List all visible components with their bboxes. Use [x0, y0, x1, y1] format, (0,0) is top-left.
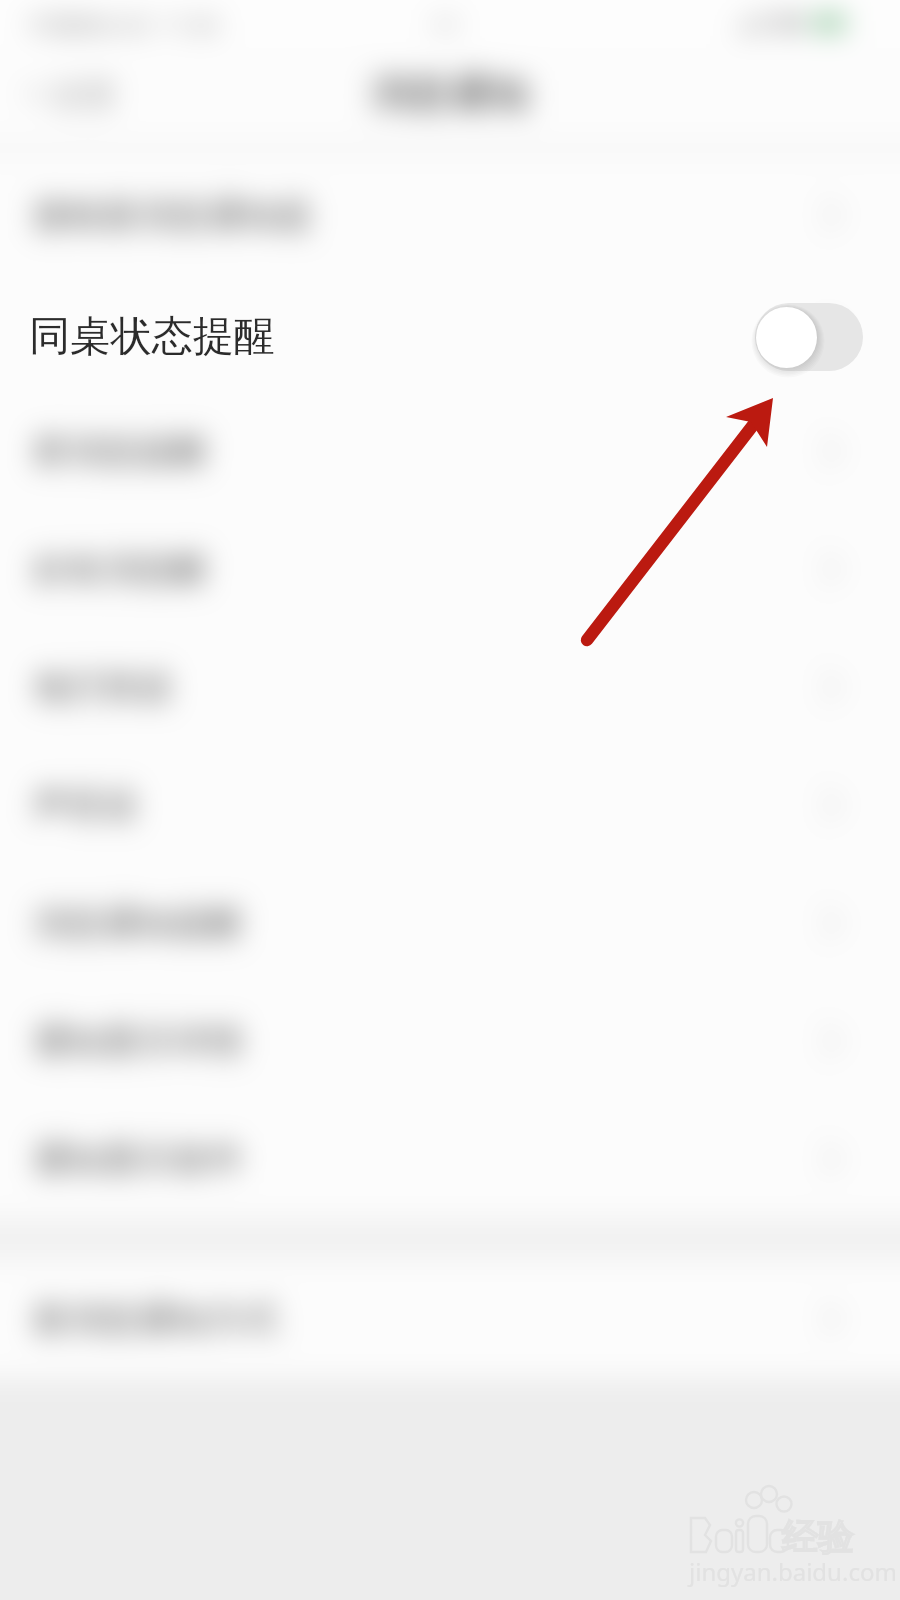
button[interactable]: 消息通知提醒: [0, 864, 900, 982]
staticText: 通知显示发件: [33, 1137, 243, 1181]
button[interactable]: [0, 274, 900, 392]
button[interactable]: 声音设: [0, 746, 900, 864]
staticText: 好友消息醒: [33, 547, 208, 591]
staticText: < 设置: [26, 72, 117, 116]
button[interactable]: 返回 设置: [0, 48, 180, 140]
staticText: 中国移动 4G 11:44: [28, 9, 218, 39]
staticText: 经验: [782, 1514, 854, 1559]
button[interactable]: 新消息通知方式: [0, 1260, 900, 1378]
staticText: 消息通知: [370, 68, 530, 118]
button[interactable]: 通知显示发件: [0, 1100, 900, 1218]
button[interactable]: 群消息提醒: [0, 392, 900, 510]
staticText: 免打扰设: [33, 665, 173, 709]
button[interactable]: 同桌状态提醒: [0, 278, 900, 396]
staticText: 同桌状态提醒: [29, 311, 275, 363]
staticText: 声音设: [33, 783, 138, 827]
staticText: 新消息通知方式: [33, 1297, 278, 1341]
staticText: 群消息提醒: [33, 429, 208, 473]
staticText: 消息通知提醒: [33, 901, 243, 945]
staticText: 接收新消息通知提: [33, 193, 313, 237]
button[interactable]: 免打扰设: [0, 628, 900, 746]
button[interactable]: 好友消息醒: [0, 510, 900, 628]
button[interactable]: 接收新消息通知提: [0, 156, 900, 274]
staticText: 通知显示详情: [33, 1019, 243, 1063]
staticText: jingyan.baidu.com: [689, 1555, 897, 1588]
button[interactable]: 同桌状态提醒 开关: [755, 303, 863, 371]
button[interactable]: 通知显示详情: [0, 982, 900, 1100]
